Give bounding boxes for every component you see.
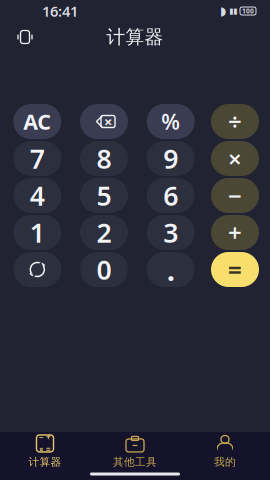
staticText: 我的 — [214, 455, 236, 468]
staticText: × — [104, 112, 112, 131]
staticText: 1 — [30, 215, 45, 250]
button[interactable]: ÷ — [211, 104, 259, 139]
staticText: 0 — [96, 252, 111, 287]
staticText: = — [228, 254, 242, 285]
staticText: 4 — [30, 178, 45, 213]
button[interactable]: + — [211, 215, 259, 250]
staticText: ◗ — [220, 4, 226, 18]
button[interactable]: 9 — [147, 141, 195, 176]
staticText: 3 — [163, 215, 178, 250]
staticText: ▮▮ — [229, 6, 237, 16]
button[interactable]: Vibration — [12, 24, 38, 50]
button[interactable]: % — [147, 104, 195, 139]
staticText: 16:41 — [42, 1, 78, 21]
staticText: . — [167, 250, 175, 289]
button[interactable]: × — [211, 141, 259, 176]
staticText: + — [228, 217, 242, 248]
button[interactable]: 7 — [13, 141, 61, 176]
button[interactable]: 其他工具 — [90, 427, 180, 472]
staticText: % — [161, 107, 180, 136]
staticText: = — [46, 444, 51, 455]
staticText: × — [39, 444, 44, 455]
button[interactable]: 3 — [147, 215, 195, 250]
button[interactable]: − — [0, 427, 90, 472]
staticText: 9 — [163, 141, 178, 176]
staticText: 5 — [96, 178, 111, 213]
button[interactable]: 4 — [13, 178, 61, 213]
button[interactable]: 我的 — [180, 427, 270, 472]
staticText: − — [228, 180, 242, 211]
button[interactable]: Reset — [13, 252, 61, 287]
button[interactable]: 6 — [147, 178, 195, 213]
button[interactable]: . — [147, 252, 195, 287]
staticText: 其他工具 — [113, 455, 157, 468]
staticText: 计算器 — [106, 25, 163, 48]
staticText: + — [46, 432, 51, 442]
staticText: 7 — [30, 141, 45, 176]
button[interactable]: 8 — [80, 141, 128, 176]
button[interactable]: Backspace — [80, 104, 128, 139]
button[interactable]: 0 — [80, 252, 128, 287]
button[interactable]: 1 — [13, 215, 61, 250]
staticText: 8 — [96, 141, 111, 176]
button[interactable]: − — [211, 178, 259, 213]
staticText: AC — [23, 107, 51, 136]
staticText: 100 — [242, 7, 254, 15]
staticText: ÷ — [228, 106, 242, 137]
staticText: − — [39, 432, 44, 442]
staticText: 计算器 — [28, 455, 61, 468]
button[interactable]: AC — [13, 104, 61, 139]
staticText: 6 — [163, 178, 178, 213]
staticText: × — [228, 143, 242, 174]
button[interactable]: = — [211, 252, 259, 287]
staticText: 2 — [96, 215, 111, 250]
button[interactable]: 2 — [80, 215, 128, 250]
button[interactable]: 5 — [80, 178, 128, 213]
